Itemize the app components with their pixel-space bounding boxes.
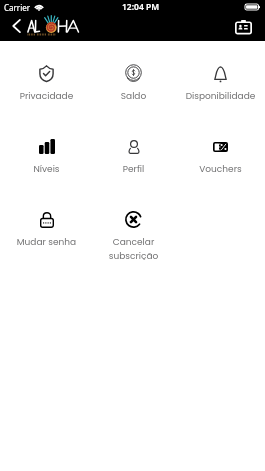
staticText: Mudar senha bbox=[3, 236, 90, 249]
button[interactable]: Cancelar subscrição bbox=[90, 187, 177, 260]
button[interactable]: Back bbox=[6, 14, 27, 38]
button[interactable]: Disponibilidade bbox=[177, 41, 264, 114]
button[interactable]: Member card bbox=[232, 14, 254, 40]
button[interactable]: Vouchers bbox=[177, 114, 264, 187]
staticText: Vouchers bbox=[177, 163, 264, 176]
staticText: Disponibilidade bbox=[177, 90, 264, 103]
button[interactable]: Mudar senha bbox=[3, 187, 90, 260]
button[interactable]: Níveis bbox=[3, 114, 90, 187]
button[interactable]: Privacidade bbox=[3, 41, 90, 114]
button[interactable]: Saldo bbox=[90, 41, 177, 114]
staticText: Privacidade bbox=[3, 90, 90, 103]
staticText: Perfil bbox=[90, 163, 177, 176]
button[interactable]: Perfil bbox=[90, 114, 177, 187]
staticText: Níveis bbox=[3, 163, 90, 176]
staticText: Saldo bbox=[90, 90, 177, 103]
staticText: 12:04 PM bbox=[122, 1, 160, 13]
staticText: Cancelar subscrição bbox=[90, 236, 177, 260]
staticText: Carrier bbox=[4, 2, 31, 13]
